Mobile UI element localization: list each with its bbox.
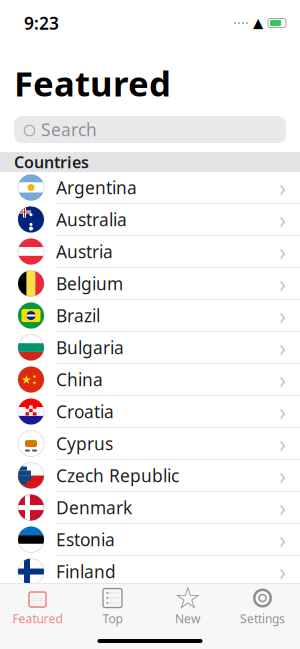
staticText: › — [279, 332, 286, 363]
button[interactable]: Argentina — [0, 172, 300, 204]
staticText: 9:23 — [24, 11, 59, 34]
staticText: › — [279, 268, 286, 299]
staticText: Top — [102, 610, 122, 626]
staticText: › — [279, 172, 286, 203]
staticText: › — [279, 524, 286, 555]
staticText: New — [175, 610, 200, 626]
staticText: Search — [41, 118, 97, 141]
button[interactable]: Croatia — [0, 396, 300, 428]
button[interactable]: Top — [75, 582, 150, 628]
button[interactable]: Denmark — [0, 492, 300, 524]
staticText: Cyprus — [56, 432, 113, 455]
button[interactable]: Finland — [0, 556, 300, 588]
staticText: Australia — [56, 208, 127, 231]
staticText: Austria — [56, 240, 113, 263]
button[interactable]: Settings — [225, 582, 300, 628]
staticText: Argentina — [56, 176, 137, 199]
staticText: Estonia — [56, 528, 115, 551]
staticText: Belgium — [56, 272, 123, 295]
staticText: › — [279, 204, 286, 235]
staticText: › — [279, 236, 286, 267]
staticText: Czech Republic — [56, 464, 179, 487]
button[interactable]: Featured — [0, 582, 75, 628]
staticText: Bulgaria — [56, 336, 124, 359]
staticText: Settings — [240, 610, 285, 626]
staticText: › — [279, 556, 286, 587]
staticText: ▲ — [253, 15, 263, 30]
button[interactable]: ○ — [14, 116, 286, 143]
staticText: France — [56, 592, 111, 615]
staticText: › — [279, 396, 286, 427]
staticText: Finland — [56, 560, 116, 583]
button[interactable]: Austria — [0, 236, 300, 268]
staticText: › — [279, 460, 286, 491]
staticText: › — [279, 364, 286, 395]
staticText: Denmark — [56, 496, 132, 519]
staticText: › — [279, 492, 286, 523]
staticText: ★ — [32, 379, 37, 386]
staticText: › — [279, 300, 286, 331]
button[interactable]: Estonia — [0, 524, 300, 556]
staticText: ★ — [21, 373, 32, 386]
button[interactable]: Brazil — [0, 300, 300, 332]
staticText: ★ — [32, 373, 37, 380]
staticText: Croatia — [56, 400, 114, 423]
button[interactable]: Cyprus — [0, 428, 300, 460]
staticText: ☆ — [174, 581, 201, 615]
button[interactable]: Czech Republic — [0, 460, 300, 492]
button[interactable]: ★ — [0, 364, 300, 396]
button[interactable]: Bulgaria — [0, 332, 300, 364]
staticText: Countries — [14, 151, 89, 173]
staticText: › — [279, 428, 286, 459]
button[interactable]: Belgium — [0, 268, 300, 300]
staticText: China — [56, 368, 103, 391]
staticText: Featured — [14, 60, 171, 106]
button[interactable]: ☆ — [150, 582, 225, 628]
button[interactable]: France — [0, 588, 300, 620]
staticText: Featured — [12, 610, 62, 626]
button[interactable]: Australia — [0, 204, 300, 236]
staticText: ○ — [23, 121, 36, 138]
staticText: Brazil — [56, 304, 100, 327]
staticText: › — [279, 588, 286, 619]
